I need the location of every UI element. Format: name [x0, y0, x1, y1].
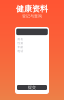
staticText: 年龄	[17, 45, 23, 49]
staticText: 性别	[17, 41, 23, 45]
staticText: 健康资料	[16, 4, 48, 14]
button[interactable]: 提交	[17, 85, 47, 90]
staticText: 提交	[28, 85, 36, 90]
staticText: 姓名	[17, 37, 23, 41]
staticText: 电话	[17, 49, 23, 53]
staticText: 登记与查询	[22, 14, 42, 19]
